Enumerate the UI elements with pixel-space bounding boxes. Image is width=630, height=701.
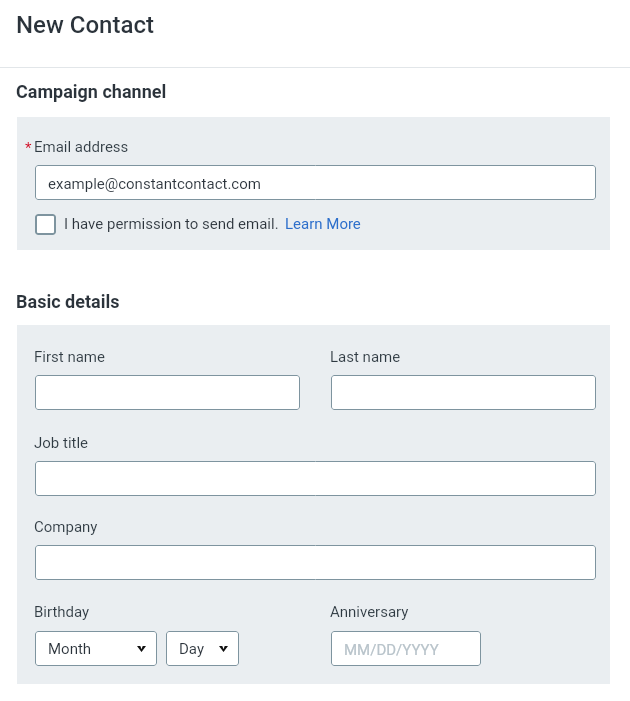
staticText: Last name (330, 348, 401, 366)
staticText: example@constantcontact.com (48, 175, 261, 193)
staticText: Anniversary (330, 603, 409, 621)
button[interactable]: I have permission to send email (35, 214, 56, 235)
staticText: Company (34, 518, 98, 536)
button[interactable]: Job title (35, 461, 596, 496)
staticText: Month (48, 640, 92, 658)
button[interactable]: Email address (35, 165, 596, 200)
button[interactable]: Anniversary (331, 631, 481, 666)
staticText: Job title (34, 434, 89, 452)
button[interactable]: First name (35, 375, 300, 410)
button[interactable]: Learn More (0, 0, 76, 18)
button[interactable]: Day dropdown (166, 631, 239, 666)
staticText: MM/DD/YYYY (344, 641, 439, 659)
staticText: Birthday (34, 603, 90, 621)
staticText: Email address (34, 138, 129, 156)
staticText: * (25, 139, 32, 157)
button[interactable]: Company (35, 545, 596, 580)
staticText: New Contact (16, 11, 154, 39)
staticText: First name (34, 348, 105, 366)
staticText: Campaign channel (16, 81, 167, 102)
button[interactable]: Month dropdown (35, 631, 157, 666)
staticText: Day (179, 640, 204, 658)
button[interactable]: Last name (331, 375, 596, 410)
staticText: Basic details (16, 291, 120, 312)
staticText: I have permission to send email. (64, 215, 279, 233)
